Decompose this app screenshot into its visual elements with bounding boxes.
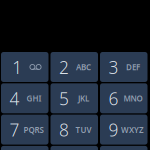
staticText: PQRS bbox=[23, 124, 43, 135]
button[interactable]: 1 bbox=[1, 52, 48, 82]
button[interactable]: ∗ bbox=[1, 146, 48, 150]
staticText: GHI bbox=[26, 93, 41, 104]
button[interactable]: 3 bbox=[100, 52, 147, 82]
button[interactable]: 4 bbox=[1, 83, 48, 113]
staticText: 2 bbox=[59, 56, 69, 79]
staticText: ABC bbox=[76, 62, 91, 72]
button[interactable]: 7 bbox=[1, 115, 48, 145]
staticText: 1 bbox=[12, 56, 22, 79]
staticText: WXYZ bbox=[121, 124, 144, 135]
button[interactable]: 9 bbox=[100, 115, 147, 145]
button[interactable]: 5 bbox=[50, 83, 98, 113]
button[interactable]: 0 bbox=[50, 146, 98, 150]
button[interactable]: 8 bbox=[50, 115, 98, 145]
button[interactable]: 2 bbox=[50, 52, 98, 82]
staticText: JKL bbox=[78, 93, 89, 104]
staticText: 3 bbox=[108, 56, 118, 79]
button[interactable]: 6 bbox=[100, 83, 147, 113]
staticText: 4 bbox=[9, 87, 19, 110]
staticText: 5 bbox=[59, 87, 69, 110]
staticText: 7 bbox=[9, 118, 19, 141]
staticText: 8 bbox=[59, 118, 69, 141]
staticText: 9 bbox=[108, 118, 118, 141]
staticText: TUV bbox=[75, 124, 91, 135]
staticText: DEF bbox=[126, 62, 140, 72]
button[interactable]: # bbox=[100, 146, 147, 150]
staticText: MNO bbox=[123, 93, 142, 104]
staticText: 6 bbox=[108, 87, 118, 110]
